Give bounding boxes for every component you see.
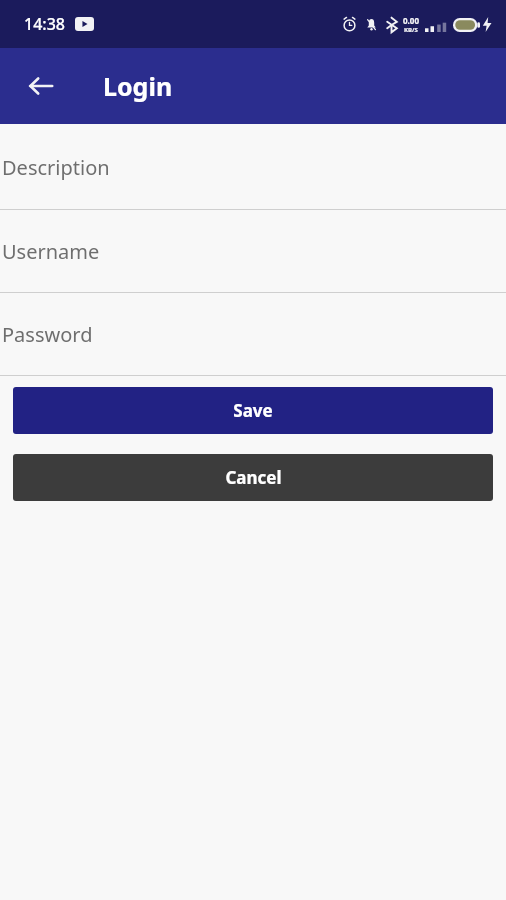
button[interactable]: Username [0, 210, 506, 292]
button[interactable]: Password [0, 293, 506, 375]
staticText: 0.00 [403, 15, 419, 26]
staticText: KB/S [404, 26, 418, 34]
button[interactable]: Cancel [13, 454, 493, 501]
staticText: Description [2, 154, 110, 181]
staticText: Cancel [225, 466, 282, 489]
staticText: Username [2, 238, 100, 265]
button[interactable]: Save [13, 387, 493, 434]
staticText: Password [2, 321, 93, 348]
staticText: Save [233, 399, 273, 422]
staticText: Login [103, 69, 173, 103]
button[interactable]: Back [14, 59, 68, 113]
button[interactable]: Description [0, 125, 506, 209]
staticText: 14:38 [24, 13, 65, 35]
